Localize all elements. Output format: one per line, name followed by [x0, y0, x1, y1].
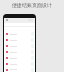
staticText: 便捷结账页面设计 [0, 2, 64, 8]
button[interactable] [4, 55, 35, 61]
button[interactable] [4, 61, 35, 67]
button[interactable] [4, 49, 35, 55]
button[interactable] [4, 31, 35, 37]
button[interactable] [4, 37, 35, 43]
button[interactable] [4, 43, 35, 49]
button[interactable] [4, 67, 35, 72]
